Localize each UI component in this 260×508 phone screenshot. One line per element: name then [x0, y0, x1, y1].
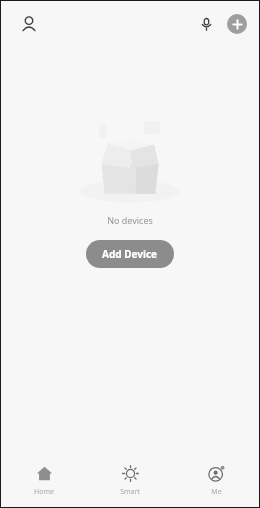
staticText: Smart: [120, 487, 140, 497]
staticText: No devices: [107, 214, 153, 226]
button[interactable]: Add: [227, 14, 247, 34]
staticText: Home: [34, 487, 54, 497]
button[interactable]: Me: [173, 455, 259, 507]
button[interactable]: Smart: [87, 455, 173, 507]
staticText: Me: [211, 487, 222, 497]
staticText: Add Device: [102, 247, 158, 261]
button[interactable]: Home: [1, 455, 87, 507]
button[interactable]: Profile: [15, 10, 43, 38]
button[interactable]: Add Device: [86, 240, 174, 268]
button[interactable]: Voice: [193, 11, 219, 37]
